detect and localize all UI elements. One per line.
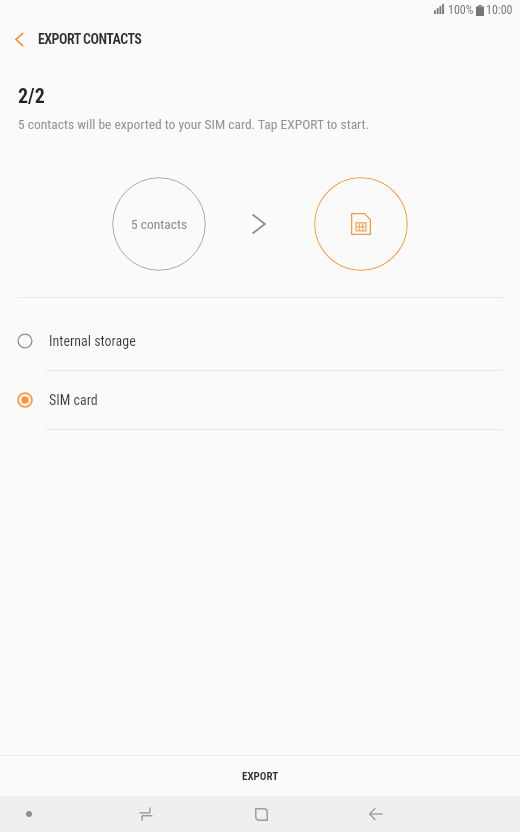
button[interactable]: Internal storage bbox=[0, 312, 520, 371]
staticText: 5 contacts will be exported to your SIM … bbox=[18, 116, 370, 132]
button[interactable]: Back bbox=[0, 22, 38, 56]
staticText: 2/2 bbox=[18, 84, 45, 107]
staticText: 10:00 bbox=[486, 3, 513, 17]
button[interactable]: Back bbox=[346, 796, 406, 832]
staticText: 100% bbox=[448, 3, 474, 17]
button[interactable]: SIM card bbox=[0, 371, 520, 430]
staticText: EXPORT bbox=[242, 770, 279, 783]
staticText: 5 contacts bbox=[131, 216, 188, 232]
staticText: Internal storage bbox=[49, 333, 136, 349]
staticText: EXPORT CONTACTS bbox=[38, 31, 142, 47]
button[interactable]: Home bbox=[231, 796, 291, 832]
button[interactable]: Recent apps bbox=[116, 796, 176, 832]
staticText: SIM card bbox=[49, 392, 98, 408]
button[interactable]: EXPORT bbox=[0, 756, 520, 796]
button[interactable]: Show keyboard bbox=[4, 796, 54, 832]
